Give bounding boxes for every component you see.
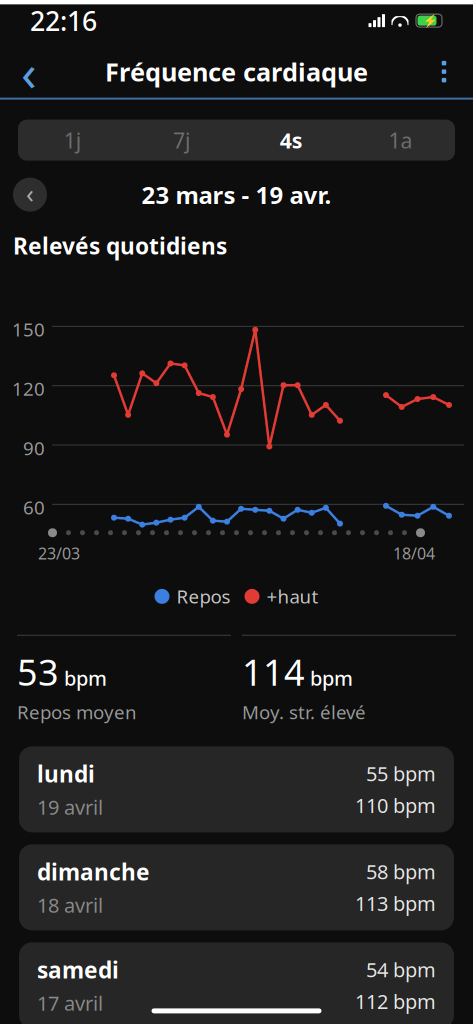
button[interactable]: 1a (346, 120, 455, 161)
staticText: 120 (12, 376, 45, 401)
button[interactable]: dimanche (19, 844, 454, 930)
staticText: ⚡ (423, 14, 438, 27)
staticText: 60 (23, 495, 45, 520)
staticText: 1a (388, 126, 412, 154)
staticText: 90 (23, 435, 45, 460)
staticText: Moy. str. élevé (242, 700, 366, 724)
staticText: Fréquence cardiaque (105, 55, 368, 88)
staticText: 54 bpm (366, 956, 436, 983)
staticText: 22:16 (30, 3, 97, 38)
staticText: 23/03 (38, 543, 80, 564)
staticText: ‹ (26, 176, 34, 210)
staticText: 55 bpm (366, 760, 436, 787)
button[interactable]: Période précédente (8, 173, 52, 217)
staticText: Relevés quotidiens (13, 231, 227, 261)
button[interactable]: Retour (6, 49, 52, 95)
staticText: Repos (176, 584, 230, 609)
button[interactable]: lundi (19, 746, 454, 832)
staticText: 112 bpm (355, 988, 436, 1014)
staticText: 17 avril (37, 990, 103, 1016)
staticText: 23 mars - 19 avr. (141, 179, 331, 211)
staticText: 58 bpm (366, 858, 436, 885)
button[interactable]: Plus d'options (421, 49, 467, 95)
staticText: 113 bpm (355, 890, 436, 916)
staticText: lundi (37, 758, 95, 789)
staticText: bpm (310, 665, 353, 691)
button[interactable]: 1j (18, 120, 127, 161)
staticText: 7j (173, 126, 191, 154)
staticText: bpm (64, 665, 107, 691)
button[interactable]: samedi (19, 942, 454, 1024)
staticText: 1j (64, 126, 82, 154)
staticText: samedi (37, 954, 119, 985)
staticText: 150 (12, 317, 45, 342)
staticText: 53 (17, 648, 59, 696)
button[interactable]: 4s (236, 120, 346, 161)
staticText: 18/04 (393, 543, 435, 564)
staticText: 110 bpm (355, 792, 436, 818)
staticText: dimanche (37, 856, 150, 887)
staticText: 18 avril (37, 892, 103, 918)
staticText: Repos moyen (17, 700, 137, 724)
staticText: 114 (242, 648, 305, 696)
staticText: +haut (266, 584, 318, 609)
staticText: 4s (280, 126, 303, 154)
staticText: 19 avril (37, 794, 103, 820)
button[interactable]: 7j (127, 120, 236, 161)
staticText: ‹ (21, 38, 37, 105)
